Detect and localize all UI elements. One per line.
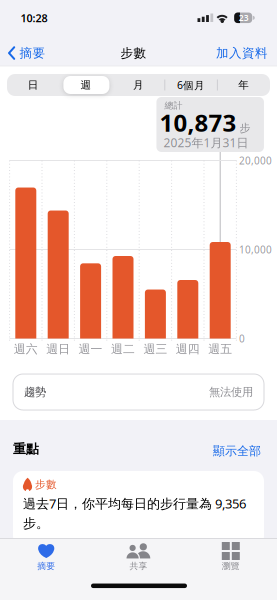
button[interactable]: 步數: [13, 471, 264, 546]
staticText: 共享: [129, 560, 147, 572]
button[interactable]: 日: [7, 74, 59, 96]
staticText: 2025年1月31日: [163, 134, 248, 151]
staticText: 0: [239, 332, 245, 345]
staticText: 週日: [46, 342, 70, 356]
staticText: 步。: [23, 515, 49, 532]
staticText: 週一: [79, 342, 103, 356]
staticText: 月: [133, 78, 144, 92]
button[interactable]: 月: [112, 74, 164, 96]
staticText: 週二: [111, 342, 135, 356]
button[interactable]: 週: [60, 74, 112, 96]
button[interactable]: 6個月: [165, 74, 217, 96]
staticText: 顯示全部: [213, 443, 261, 458]
staticText: 摘要: [19, 45, 45, 61]
staticText: 摘要: [37, 560, 55, 572]
staticText: 年: [238, 78, 249, 92]
staticText: 無法使用: [209, 385, 253, 399]
button[interactable]: 年: [218, 74, 270, 96]
staticText: 10,873: [159, 106, 236, 139]
staticText: 總計: [164, 100, 182, 111]
staticText: 20,000: [239, 154, 272, 167]
staticText: 瀏覽: [222, 560, 240, 572]
button[interactable]: 顯示全部: [197, 442, 261, 460]
button[interactable]: 共享: [98, 537, 178, 577]
staticText: 週四: [176, 342, 200, 356]
button[interactable]: 瀏覽: [191, 537, 271, 577]
staticText: 加入資料: [216, 45, 268, 61]
staticText: 23: [239, 12, 249, 23]
staticText: 日: [28, 78, 39, 92]
staticText: 10,000: [239, 243, 272, 256]
staticText: 重點: [13, 441, 39, 457]
staticText: 步數: [120, 45, 146, 61]
staticText: 趨勢: [24, 385, 46, 399]
staticText: 步: [239, 121, 250, 135]
staticText: 週三: [143, 342, 167, 356]
staticText: 週五: [208, 342, 232, 356]
staticText: 10:28: [20, 11, 47, 25]
button[interactable]: 趨勢: [13, 374, 264, 410]
staticText: 6個月: [177, 78, 205, 92]
staticText: 週六: [14, 342, 38, 356]
staticText: 週: [80, 78, 91, 92]
button[interactable]: 摘要: [8, 42, 56, 64]
staticText: 過去7日，你平均每日的步行量為 9,356: [23, 495, 246, 512]
button[interactable]: 摘要: [6, 537, 86, 577]
staticText: 步數: [35, 478, 57, 491]
button[interactable]: 加入資料: [204, 42, 268, 64]
